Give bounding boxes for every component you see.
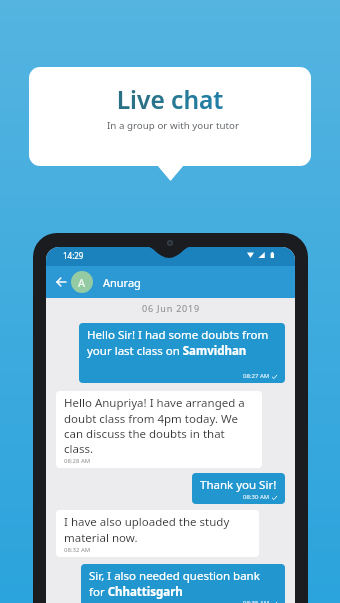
button[interactable]: Live chat [29, 67, 311, 166]
staticText: In a group or with your tutor [32, 119, 311, 132]
staticText: A [78, 275, 86, 290]
button[interactable]: I have also uploaded the study material … [56, 510, 259, 557]
staticText: Live chat [29, 83, 311, 116]
staticText: I have also uploaded the study material … [64, 514, 251, 545]
staticText: Hello Anupriya! I have arranged a doubt … [64, 395, 254, 456]
button[interactable]: Back [51, 272, 71, 292]
staticText: Anurag [103, 275, 141, 290]
button[interactable]: Thank you Sir! [192, 473, 285, 504]
staticText: 08:30 AM [243, 493, 270, 501]
staticText: Sir, I also needed question bank for Chh… [89, 568, 277, 599]
button[interactable]: Sir, I also needed question bank for Chh… [81, 564, 285, 603]
button[interactable]: Hello Anupriya! I have arranged a doubt … [56, 391, 262, 468]
staticText: 08:32 AM [64, 546, 91, 554]
staticText: Hello Sir! I had some doubts from your l… [87, 327, 277, 358]
staticText: 14:29 [63, 250, 84, 261]
button[interactable]: Hello Sir! I had some doubts from your l… [79, 323, 285, 383]
staticText: 08:28 AM [64, 457, 91, 465]
staticText: 06 Jun 2019 [142, 302, 200, 314]
staticText: 08:35 AM [243, 599, 270, 603]
staticText: 08:27 AM [243, 372, 270, 380]
staticText: Thank you Sir! [200, 477, 277, 493]
